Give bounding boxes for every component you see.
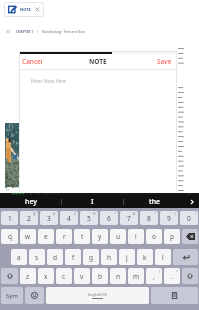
button[interactable]: hey xyxy=(0,195,61,208)
staticText: x xyxy=(44,272,48,281)
button[interactable]: l xyxy=(155,249,171,265)
button[interactable]: x xyxy=(38,268,54,284)
button[interactable]: Emoji xyxy=(25,287,44,304)
button[interactable]: h xyxy=(101,249,117,265)
staticText: Sym xyxy=(6,292,18,300)
button[interactable]: j xyxy=(119,249,135,265)
staticText: 6 xyxy=(107,214,111,223)
button[interactable]: shift xyxy=(1,268,18,284)
button[interactable]: p xyxy=(164,229,180,244)
button[interactable]: i xyxy=(128,229,144,244)
button[interactable]: 7 xyxy=(120,211,138,225)
staticText: , xyxy=(153,272,155,281)
staticText: q xyxy=(8,232,12,241)
button[interactable]: the xyxy=(124,195,185,208)
button[interactable]: q xyxy=(1,229,18,244)
button[interactable]: 0 xyxy=(180,211,198,225)
button[interactable]: Save xyxy=(152,55,177,68)
staticText: & xyxy=(133,212,136,216)
button[interactable]: 6 xyxy=(100,211,118,225)
button[interactable]: e xyxy=(38,229,54,244)
staticText: Cancel xyxy=(22,57,43,66)
staticText: ! xyxy=(159,269,160,274)
staticText: j xyxy=(126,253,128,262)
button[interactable]: 8 xyxy=(140,211,158,225)
button[interactable]: More suggestions xyxy=(185,195,199,208)
button[interactable]: g xyxy=(83,249,99,265)
staticText: u xyxy=(116,232,121,241)
button[interactable]: 9 xyxy=(160,211,178,225)
staticText: Microbiology: Then and Now xyxy=(42,30,85,34)
button[interactable]: d xyxy=(47,249,63,265)
button[interactable]: t xyxy=(74,229,90,244)
staticText: 30 xyxy=(6,30,10,34)
button[interactable]: back xyxy=(182,229,198,244)
button[interactable]: a xyxy=(11,249,27,265)
staticText: English(US) xyxy=(88,292,107,297)
staticText: 2 xyxy=(27,214,31,223)
button[interactable]: c xyxy=(56,268,72,284)
button[interactable]: Clipboard xyxy=(151,287,198,304)
staticText: s xyxy=(35,253,39,262)
button[interactable]: 5 xyxy=(80,211,98,225)
button[interactable]: m xyxy=(128,268,144,284)
button[interactable]: Close tab xyxy=(34,6,41,13)
button[interactable]: Enter Note Here xyxy=(19,70,177,194)
staticText: ( xyxy=(175,212,176,216)
staticText: | xyxy=(37,30,39,34)
button[interactable]: v xyxy=(74,268,90,284)
staticText: Save xyxy=(157,57,172,66)
button[interactable]: k xyxy=(137,249,153,265)
staticText: I xyxy=(91,197,94,207)
staticText: p xyxy=(170,232,174,241)
staticText: k xyxy=(143,253,147,262)
staticText: Enter Note Here xyxy=(31,78,66,84)
staticText: 5 xyxy=(87,214,91,223)
button[interactable]: Cancel xyxy=(19,55,46,68)
staticText: b xyxy=(98,272,102,281)
button[interactable]: w xyxy=(20,229,36,244)
staticText: % xyxy=(93,212,96,216)
staticText: 7 xyxy=(127,214,131,223)
button[interactable]: b xyxy=(92,268,108,284)
button[interactable]: n xyxy=(110,268,126,284)
staticText: f xyxy=(72,253,75,262)
staticText: r xyxy=(63,232,66,241)
button[interactable]: y xyxy=(92,229,108,244)
staticText: * xyxy=(154,212,156,216)
staticText: the xyxy=(149,197,161,207)
staticText: # xyxy=(53,212,56,216)
button[interactable]: enter xyxy=(173,249,198,265)
staticText: l xyxy=(162,253,164,262)
staticText: h xyxy=(107,253,112,262)
button[interactable]: shift xyxy=(182,268,198,284)
button[interactable]: English(US) xyxy=(46,287,149,304)
button[interactable]: , xyxy=(146,268,162,284)
staticText: @ xyxy=(33,212,36,216)
button[interactable]: r xyxy=(56,229,72,244)
button[interactable]: 2 xyxy=(20,211,38,225)
button[interactable]: s xyxy=(29,249,45,265)
button[interactable]: u xyxy=(110,229,126,244)
staticText: $ xyxy=(74,212,76,216)
button[interactable]: . xyxy=(164,268,180,284)
button[interactable]: NOTE xyxy=(4,2,44,17)
button[interactable]: 3 xyxy=(40,211,58,225)
staticText: a xyxy=(17,253,21,262)
staticText: d xyxy=(53,253,57,262)
button[interactable]: o xyxy=(146,229,162,244)
staticText: 9 xyxy=(167,214,171,223)
staticText: NOTE xyxy=(20,7,31,12)
button[interactable]: I xyxy=(62,195,123,208)
button[interactable]: z xyxy=(20,268,36,284)
staticText: . xyxy=(171,272,173,281)
button[interactable]: Sym xyxy=(1,287,23,304)
staticText: c xyxy=(62,272,66,281)
staticText: e xyxy=(44,232,48,241)
button[interactable]: f xyxy=(65,249,81,265)
button[interactable]: 4 xyxy=(60,211,78,225)
staticText: g xyxy=(89,253,93,262)
staticText: ^ xyxy=(114,212,116,216)
staticText: 4 xyxy=(67,214,71,223)
button[interactable]: 1 xyxy=(1,211,18,225)
